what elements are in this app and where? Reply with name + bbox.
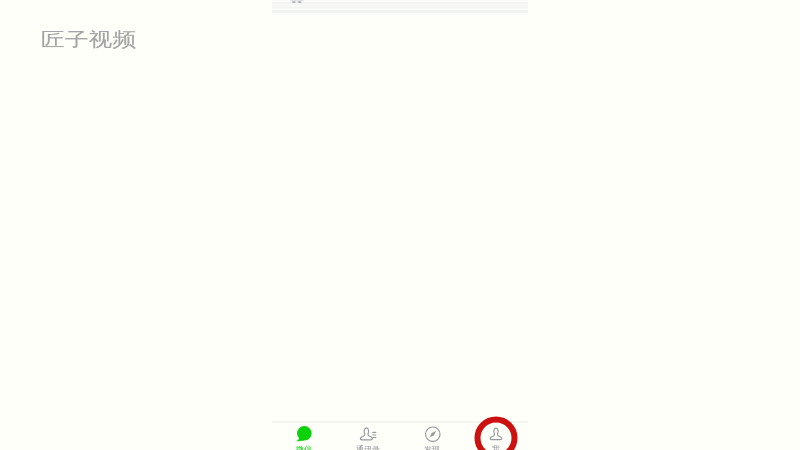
staticText: 微信 [296, 444, 312, 450]
staticText: 发现 [424, 444, 440, 450]
staticText: 匠子视频 [41, 27, 136, 52]
staticText: 通讯录 [356, 444, 380, 450]
button[interactable]: Me [464, 423, 528, 450]
button[interactable]: Contacts [336, 423, 400, 450]
staticText: 我 [492, 444, 500, 450]
button[interactable]: Discover [400, 423, 464, 450]
button[interactable]: WeChat [272, 423, 336, 450]
other: Highlight [472, 414, 520, 450]
